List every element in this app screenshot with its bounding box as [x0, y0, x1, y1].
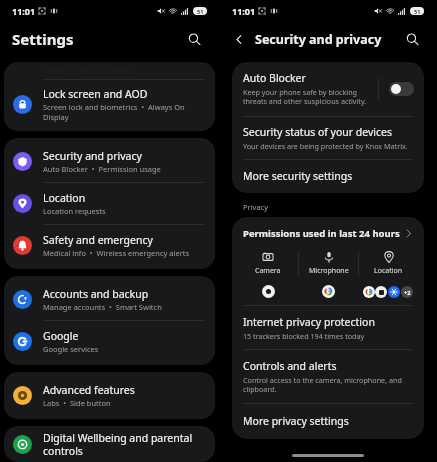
staticText: Manage accounts • Smart Switch: [43, 302, 162, 312]
button[interactable]: Internet privacy protection: [232, 306, 424, 349]
button[interactable]: Microphone: [299, 247, 358, 280]
staticText: Settings: [12, 29, 74, 49]
staticText: Accounts and backup: [43, 287, 149, 301]
button[interactable]: Controls and alerts: [232, 350, 424, 403]
staticText: More privacy settings: [243, 414, 349, 428]
staticText: Internet privacy protection: [243, 315, 375, 329]
button[interactable]: More privacy settings: [232, 404, 424, 439]
staticText: Google services: [43, 344, 99, 354]
button[interactable]: Auto Blocker: [232, 62, 424, 116]
staticText: Control access to the camera, microphone…: [243, 375, 402, 395]
button[interactable]: Safety and emergency: [4, 225, 215, 266]
staticText: 15 trackers blocked 194 times today: [243, 331, 365, 341]
button[interactable]: Search: [401, 28, 423, 50]
staticText: Digital Wellbeing and parental controls: [43, 431, 193, 458]
staticText: Your devices are being protected by Knox…: [243, 141, 408, 151]
staticText: Medical info • Wireless emergency alerts: [43, 248, 190, 258]
staticText: Advanced features: [43, 383, 135, 397]
button[interactable]: Security status of your devices: [232, 117, 424, 159]
button[interactable]: Search: [183, 28, 205, 50]
staticText: More security settings: [243, 169, 353, 183]
button[interactable]: Google: [4, 321, 215, 362]
staticText: Screen lock and biometrics • Always On D…: [43, 102, 185, 122]
staticText: Location requests: [43, 206, 106, 216]
staticText: Google: [43, 329, 79, 343]
button[interactable]: More security settings: [232, 160, 424, 193]
button[interactable]: Camera: [238, 247, 298, 280]
staticText: Keep your phone safe by blocking threats…: [243, 87, 367, 107]
staticText: Permissions used in last 24 hours: [243, 227, 403, 240]
staticText: Microphone: [309, 266, 349, 276]
staticText: Privacy: [243, 202, 269, 212]
staticText: Auto Blocker: [243, 71, 306, 85]
staticText: Location: [43, 191, 86, 205]
button[interactable]: Advanced features: [4, 375, 215, 416]
button[interactable]: Accounts and backup: [4, 279, 215, 320]
button[interactable]: Digital Wellbeing and parental controls: [4, 431, 215, 458]
staticText: Controls and alerts: [243, 359, 337, 373]
staticText: Camera: [255, 266, 281, 276]
button[interactable]: Back: [229, 29, 249, 49]
staticText: 51: [197, 8, 204, 15]
staticText: Lock screen and AOD: [43, 87, 148, 101]
staticText: Location: [374, 266, 403, 276]
staticText: 11:01: [232, 5, 256, 17]
staticText: Labs • Side button: [43, 398, 111, 408]
staticText: Security and privacy: [255, 31, 382, 48]
staticText: Auto Blocker • Permission usage: [43, 164, 161, 174]
button[interactable]: Auto Blocker toggle: [389, 82, 414, 96]
staticText: 11:01: [12, 5, 36, 17]
staticText: Safety and emergency: [43, 233, 153, 247]
button[interactable]: Lock screen and AOD: [4, 80, 215, 131]
staticText: Security and privacy: [43, 149, 142, 163]
staticText: Security status of your devices: [243, 125, 393, 139]
button[interactable]: Location: [4, 183, 215, 224]
staticText: +2: [404, 289, 411, 296]
button[interactable]: Permissions used in last 24 hours: [232, 217, 424, 247]
staticText: 51: [414, 8, 421, 15]
button[interactable]: Security and privacy: [4, 141, 215, 182]
button[interactable]: Location: [359, 247, 418, 280]
